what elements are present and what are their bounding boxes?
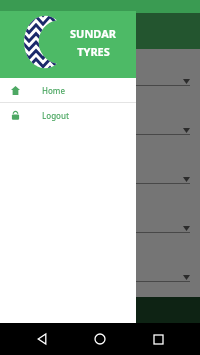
button[interactable]: Home: [84, 323, 116, 355]
button[interactable]: Logout: [0, 103, 136, 127]
staticText: Home: [42, 85, 66, 96]
button[interactable]: [10, 210, 190, 233]
button[interactable]: [10, 161, 190, 184]
button[interactable]: [10, 112, 190, 135]
button[interactable]: SUBMIT: [0, 297, 200, 323]
button[interactable]: [10, 63, 190, 86]
staticText: BRAND AND SIZE: [46, 24, 136, 39]
staticText: TYRES: [77, 44, 110, 59]
staticText: Logout: [42, 110, 70, 121]
button[interactable]: Recent apps: [142, 323, 174, 355]
button[interactable]: [10, 259, 190, 282]
button[interactable]: Back: [26, 323, 58, 355]
button[interactable]: Home: [0, 78, 136, 102]
staticText: SUNDAR: [70, 26, 116, 41]
